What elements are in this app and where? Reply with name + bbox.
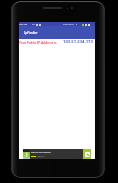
staticText: 103.51.234.173 bbox=[63, 39, 93, 45]
staticText: Your Public IP Address is bbox=[19, 41, 57, 45]
staticText: 100,000+ bbox=[37, 155, 45, 157]
staticText: Sign up for Walmart bbox=[31, 151, 51, 154]
button[interactable]: Sign up for Walmart bbox=[23, 149, 91, 159]
staticText: Emergency bbox=[63, 23, 74, 26]
staticText: IpFinder bbox=[24, 30, 38, 35]
staticText: 3G bbox=[32, 23, 35, 26]
staticText: 7:09 AM bbox=[19, 23, 28, 26]
other: Install bbox=[83, 149, 91, 159]
